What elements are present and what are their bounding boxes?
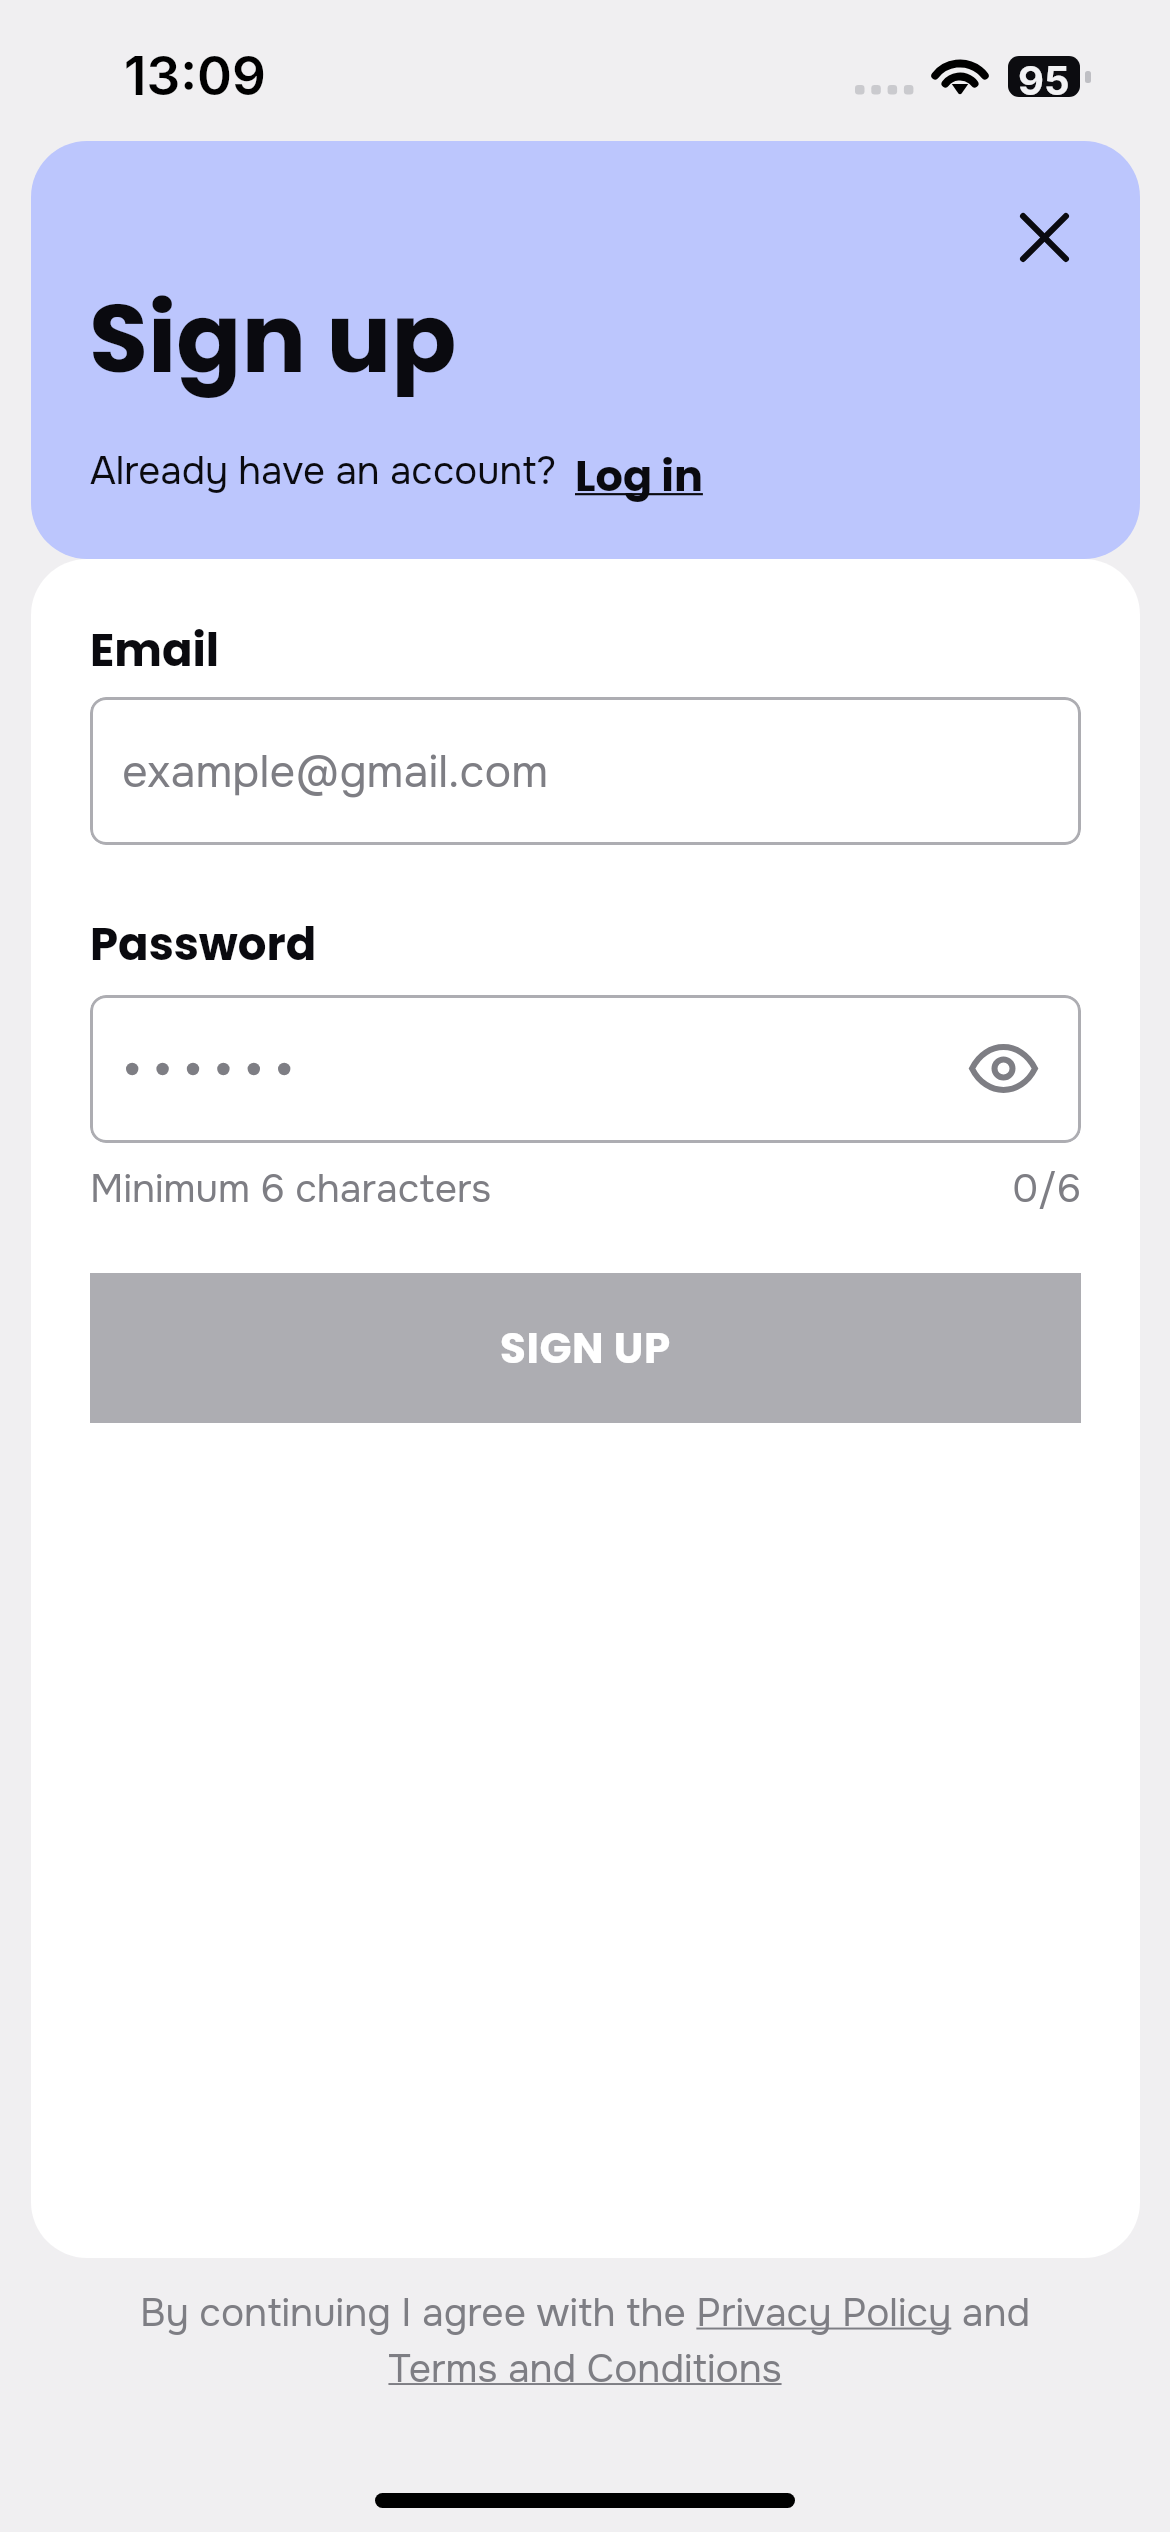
staticText: example@gmail.com — [122, 743, 549, 800]
button[interactable]: SIGN UP — [90, 1273, 1081, 1423]
button[interactable]: example@gmail.com — [90, 697, 1081, 845]
staticText: Sign up — [89, 271, 457, 405]
staticText: 0/6 — [881, 1164, 1081, 1214]
staticText: By continuing I agree with the Privacy P… — [110, 2288, 1060, 2393]
staticText: 95 — [1018, 56, 1070, 97]
staticText: Log in — [575, 446, 703, 506]
button[interactable]: Close — [996, 189, 1092, 285]
staticText: Password — [90, 913, 317, 976]
staticText: 13:09 — [124, 44, 266, 108]
staticText: Email — [90, 619, 220, 682]
staticText: SIGN UP — [500, 1319, 671, 1378]
staticText: Already have an account? — [90, 447, 557, 496]
button[interactable]: Show password — [956, 1030, 1050, 1106]
button[interactable]: Show password — [90, 995, 1081, 1143]
staticText: Minimum 6 characters — [90, 1164, 492, 1214]
button[interactable]: Log in — [569, 446, 709, 506]
